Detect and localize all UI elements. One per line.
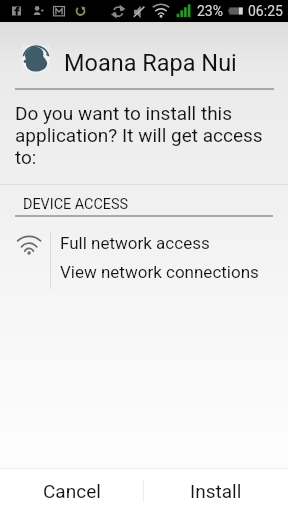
staticText: DEVICE ACCESS	[23, 196, 129, 213]
staticText: Do you want to install this application?…	[15, 102, 267, 168]
staticText: 23%	[197, 3, 223, 19]
button[interactable]: Cancel	[0, 469, 143, 512]
staticText: Full network access	[60, 233, 210, 253]
staticText: 06:25	[248, 3, 283, 19]
staticText: Install	[190, 480, 242, 502]
staticText: Cancel	[43, 480, 101, 502]
staticText: Moana Rapa Nui	[64, 49, 237, 77]
staticText: View network connections	[60, 262, 259, 282]
button[interactable]: Install	[144, 469, 288, 512]
